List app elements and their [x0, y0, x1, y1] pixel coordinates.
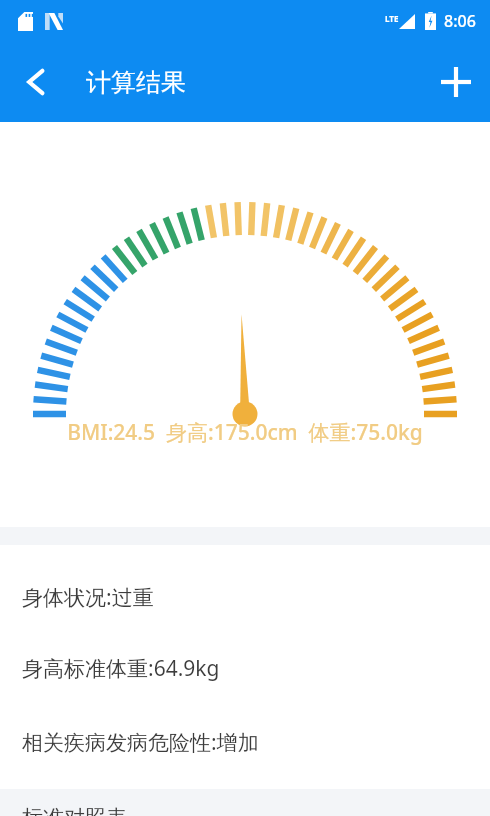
staticText: 相关疾病发病危险性:增加: [22, 728, 259, 757]
button[interactable]: 身体状况:过重: [0, 545, 490, 612]
staticText: BMI:24.5 身高:175.0cm 体重:75.0kg: [67, 418, 423, 447]
staticText: 身高标准体重:64.9kg: [22, 654, 220, 683]
button[interactable]: Back: [8, 54, 64, 110]
button[interactable]: 标准对照表: [0, 789, 490, 816]
button[interactable]: 相关疾病发病危险性:增加: [0, 683, 490, 757]
staticText: 计算结果: [86, 67, 186, 98]
staticText: LTE: [385, 13, 399, 24]
staticText: 标准对照表: [22, 805, 127, 816]
staticText: 身体状况:过重: [22, 583, 154, 612]
button[interactable]: Add: [426, 52, 486, 112]
button[interactable]: 身高标准体重:64.9kg: [0, 612, 490, 683]
staticText: 8:06: [444, 10, 476, 32]
